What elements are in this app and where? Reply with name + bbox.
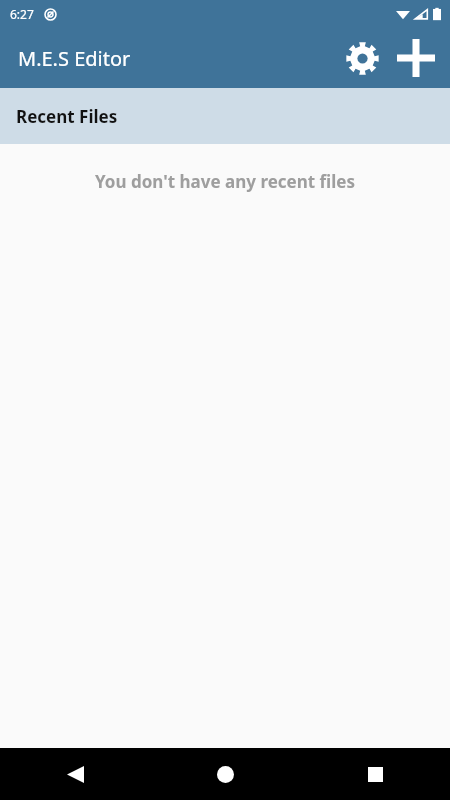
staticText: Recent Files xyxy=(16,105,118,128)
staticText: You don't have any recent files xyxy=(0,170,450,193)
button[interactable]: Home xyxy=(150,748,300,800)
staticText: 6:27 xyxy=(10,6,34,22)
button[interactable]: Recent Files xyxy=(0,88,450,144)
button[interactable]: Back xyxy=(0,748,150,800)
button[interactable]: Recent apps xyxy=(300,748,450,800)
button[interactable]: Settings xyxy=(336,32,388,84)
button[interactable]: Add xyxy=(388,30,444,86)
staticText: M.E.S Editor xyxy=(18,45,131,72)
